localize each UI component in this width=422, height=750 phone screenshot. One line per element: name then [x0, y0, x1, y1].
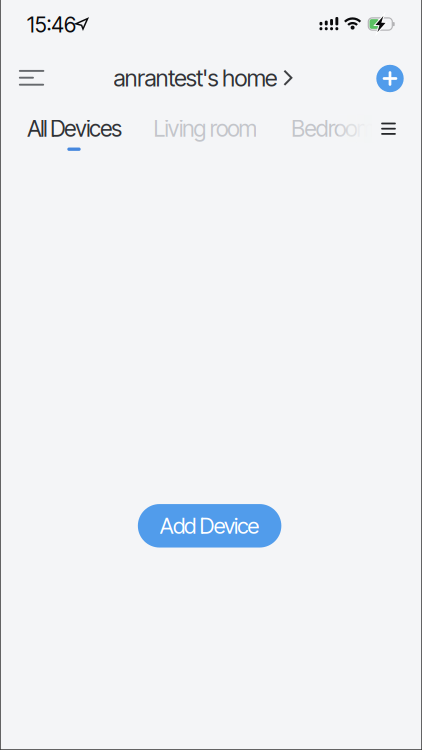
staticText: All Devices — [27, 115, 122, 142]
button[interactable]: Living room — [145, 111, 265, 147]
button[interactable]: Add Device — [138, 504, 281, 547]
button[interactable]: Bedroom — [283, 111, 383, 147]
button[interactable]: Menu — [9, 62, 53, 94]
staticText: 15:46 — [27, 12, 76, 38]
button[interactable]: anrantest's home — [110, 58, 300, 98]
staticText: Living room — [153, 115, 257, 142]
staticText: anrantest's home — [114, 64, 277, 92]
button[interactable]: Add — [368, 56, 412, 100]
button[interactable]: Manage rooms — [368, 113, 408, 145]
button[interactable]: All Devices — [15, 111, 135, 147]
staticText: Bedroom — [291, 115, 375, 142]
staticText: Add Device — [160, 512, 259, 539]
